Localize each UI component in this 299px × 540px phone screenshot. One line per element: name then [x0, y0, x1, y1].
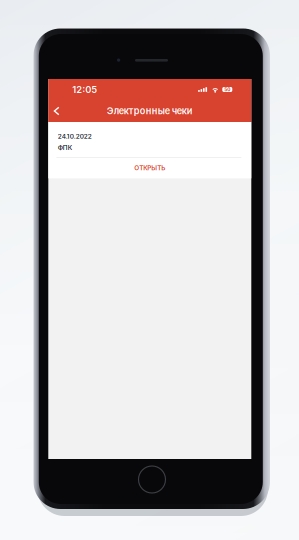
staticText: 12:05	[72, 84, 97, 95]
button[interactable]: ОТКРЫТЬ	[48, 158, 251, 178]
staticText: Электронные чеки	[107, 105, 193, 116]
staticText: 50	[224, 87, 230, 92]
button[interactable]: Back	[48, 99, 66, 123]
staticText: ОТКРЫТЬ	[134, 164, 165, 172]
staticText: 24.10.2022	[58, 132, 92, 140]
staticText: ФПК	[58, 144, 73, 151]
